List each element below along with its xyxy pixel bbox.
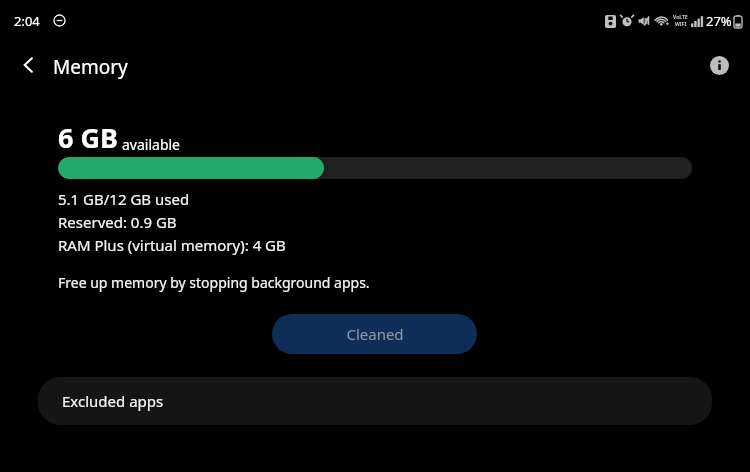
staticText: RAM Plus (virtual memory): 4 GB	[58, 235, 286, 255]
staticText: WIFI	[675, 21, 687, 28]
button[interactable]: Cleaned	[272, 314, 477, 354]
button[interactable]: Excluded apps	[38, 377, 712, 425]
staticText: Reserved: 0.9 GB	[58, 212, 177, 232]
staticText: 2:04	[14, 12, 40, 30]
staticText: 27%	[706, 12, 732, 30]
staticText: Free up memory by stopping background ap…	[58, 273, 370, 292]
staticText: Excluded apps	[62, 391, 164, 411]
staticText: available	[122, 135, 181, 154]
staticText: Memory	[53, 54, 128, 80]
button[interactable]: Back	[10, 46, 48, 84]
staticText: VoLTE	[673, 14, 688, 21]
button[interactable]: Information	[700, 46, 738, 84]
staticText: Cleaned	[346, 324, 404, 344]
staticText: 6 GB	[58, 119, 118, 156]
staticText: 5.1 GB/12 GB used	[58, 189, 190, 209]
